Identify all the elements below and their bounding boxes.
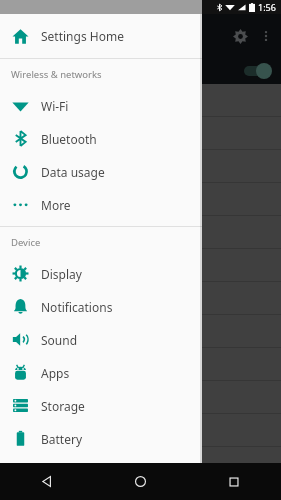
staticText: 1:56 bbox=[258, 1, 276, 13]
staticText: Apps bbox=[41, 365, 70, 381]
staticText: Device bbox=[11, 236, 41, 249]
button[interactable]: Home bbox=[93, 463, 187, 500]
staticText: Wi-Fi bbox=[41, 98, 69, 114]
staticText: Battery bbox=[41, 431, 83, 447]
staticText: Sound bbox=[41, 332, 78, 348]
staticText: Display bbox=[41, 266, 82, 282]
button[interactable]: More bbox=[0, 188, 202, 221]
staticText: Bluetooth bbox=[41, 131, 97, 147]
staticText: Notifications bbox=[41, 299, 113, 315]
button[interactable]: Apps bbox=[0, 356, 202, 389]
button[interactable]: Sound bbox=[0, 323, 202, 356]
button[interactable]: Battery bbox=[0, 422, 202, 455]
button[interactable]: Wi-Fi bbox=[0, 89, 202, 122]
button[interactable]: More options bbox=[254, 24, 278, 48]
button[interactable]: Back bbox=[0, 463, 93, 500]
button[interactable]: Settings bbox=[228, 24, 252, 48]
staticText: Data usage bbox=[41, 164, 105, 180]
button[interactable]: Display bbox=[0, 257, 202, 290]
staticText: More bbox=[41, 197, 71, 213]
button[interactable]: Toggle bbox=[240, 63, 274, 79]
button[interactable]: Settings Home bbox=[0, 14, 202, 58]
button[interactable]: Data usage bbox=[0, 155, 202, 188]
staticText: Wireless & networks bbox=[11, 68, 102, 81]
button[interactable]: Recents bbox=[187, 463, 281, 500]
button[interactable]: Storage bbox=[0, 389, 202, 422]
button[interactable]: Notifications bbox=[0, 290, 202, 323]
staticText: Settings Home bbox=[41, 28, 124, 44]
staticText: Storage bbox=[41, 398, 85, 414]
button[interactable]: Bluetooth bbox=[0, 122, 202, 155]
